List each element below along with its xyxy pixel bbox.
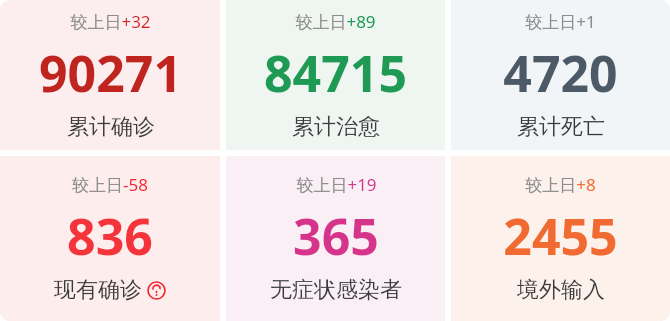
button[interactable]: 较上日+32 bbox=[0, 0, 220, 150]
staticText: 84715 bbox=[264, 39, 407, 107]
staticText: 2455 bbox=[503, 202, 618, 270]
staticText: 现有确诊 bbox=[54, 276, 142, 304]
button[interactable]: 较上日+8 bbox=[451, 156, 670, 321]
button[interactable]: 较上日+89 bbox=[226, 0, 445, 150]
staticText: 836 bbox=[67, 202, 153, 270]
staticText: 累计死亡 bbox=[517, 113, 605, 141]
staticText: 累计确诊 bbox=[67, 113, 155, 141]
staticText: 365 bbox=[293, 202, 379, 270]
staticText: 较上日+89 bbox=[295, 10, 376, 33]
staticText: 较上日+1 bbox=[525, 10, 596, 33]
staticText: 90271 bbox=[39, 39, 182, 107]
staticText: 较上日+19 bbox=[296, 173, 377, 196]
staticText: 累计治愈 bbox=[292, 113, 380, 141]
button[interactable]: 较上日+19 bbox=[226, 156, 445, 321]
staticText: 较上日-58 bbox=[72, 173, 148, 196]
button[interactable]: Help: what is 现有确诊 bbox=[147, 281, 166, 300]
button[interactable]: 较上日+1 bbox=[451, 0, 670, 150]
staticText: 较上日+32 bbox=[70, 10, 151, 33]
staticText: 4720 bbox=[503, 39, 618, 107]
button[interactable]: 较上日-58 bbox=[0, 156, 220, 321]
staticText: 较上日+8 bbox=[525, 173, 596, 196]
staticText: 境外输入 bbox=[517, 276, 605, 304]
staticText: 无症状感染者 bbox=[270, 276, 402, 304]
